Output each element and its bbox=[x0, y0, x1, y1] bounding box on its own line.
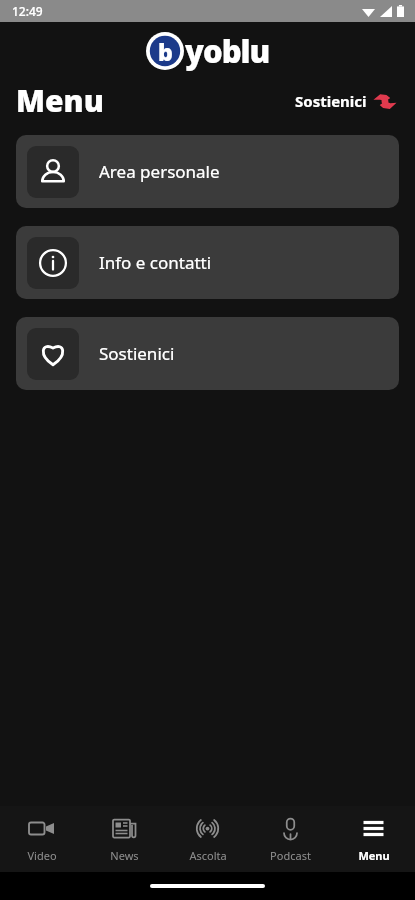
staticText: Video bbox=[27, 848, 57, 863]
staticText: Ascolta bbox=[189, 848, 227, 863]
staticText: Menu bbox=[16, 80, 104, 121]
button[interactable]: Area personale bbox=[16, 135, 399, 208]
button[interactable]: Menu bbox=[332, 806, 415, 872]
staticText: yoblu bbox=[185, 30, 270, 72]
staticText: Sostienici bbox=[99, 342, 175, 365]
staticText: Menu bbox=[358, 848, 390, 863]
staticText: News bbox=[110, 848, 139, 863]
button[interactable]: Sostienici bbox=[293, 87, 399, 115]
button[interactable]: Ascolta bbox=[166, 806, 249, 872]
staticText: 12:49 bbox=[12, 3, 43, 19]
button[interactable]: Info e contatti bbox=[16, 226, 399, 299]
button[interactable]: News bbox=[83, 806, 166, 872]
staticText: Podcast bbox=[270, 848, 311, 863]
button[interactable]: Sostienici bbox=[16, 317, 399, 390]
staticText: Info e contatti bbox=[99, 251, 212, 274]
staticText: b bbox=[158, 36, 173, 67]
button[interactable]: Podcast bbox=[249, 806, 332, 872]
staticText: Sostienici bbox=[295, 91, 367, 111]
staticText: Area personale bbox=[99, 160, 220, 183]
button[interactable]: Video bbox=[0, 806, 83, 872]
